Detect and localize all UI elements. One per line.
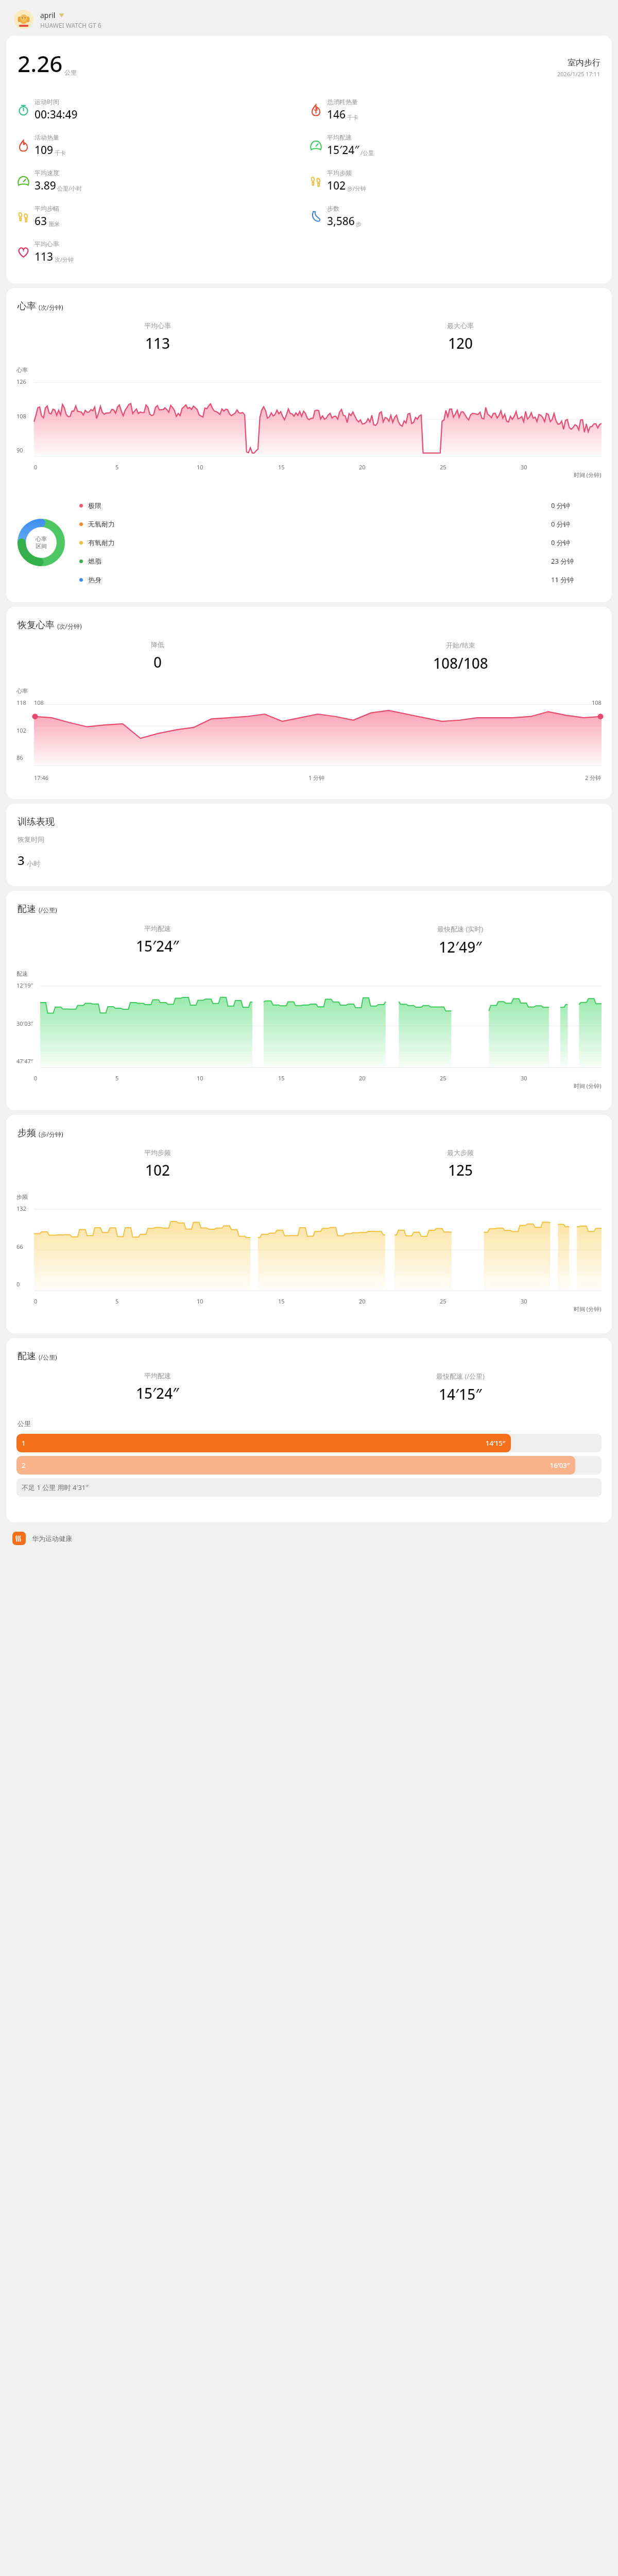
staticText: 20 bbox=[359, 463, 366, 471]
staticText: 12′49″ bbox=[439, 937, 482, 957]
staticText: 心率 bbox=[16, 687, 28, 694]
staticText: /公里 bbox=[360, 149, 374, 157]
staticText: 10 bbox=[197, 463, 203, 471]
staticText: 14′15″ bbox=[439, 1384, 482, 1404]
staticText: 1 bbox=[22, 1438, 26, 1448]
button[interactable]: 1 bbox=[16, 1434, 602, 1452]
staticText: 步频 bbox=[18, 1127, 36, 1139]
staticText: 0 分钟 bbox=[551, 538, 570, 547]
staticText: 最大心率 bbox=[447, 321, 474, 330]
staticText: 平均配速 bbox=[144, 1371, 171, 1380]
staticText: 0 bbox=[34, 463, 38, 471]
staticText: 平均配速 bbox=[144, 924, 171, 933]
staticText: 配速 bbox=[18, 903, 36, 915]
staticText: 心率 bbox=[36, 535, 47, 543]
staticText: 23 分钟 bbox=[551, 556, 574, 566]
button[interactable]: 平均速度 bbox=[16, 169, 309, 193]
button[interactable]: 不足 1 公里 用时 4′31″ bbox=[16, 1478, 602, 1497]
staticText: 30 bbox=[521, 1074, 527, 1082]
button[interactable]: 平均心率 bbox=[16, 240, 309, 264]
staticText: 102 bbox=[327, 178, 346, 193]
staticText: 运动时间 bbox=[35, 98, 59, 106]
staticText: 平均心率 bbox=[35, 240, 59, 248]
staticText: 5 bbox=[115, 1074, 119, 1082]
staticText: 20 bbox=[359, 1297, 366, 1305]
staticText: 平均步幅 bbox=[35, 205, 59, 212]
staticText: 平均步频 bbox=[144, 1148, 171, 1157]
button[interactable]: 步数 bbox=[309, 205, 602, 229]
button[interactable]: 平均配速 bbox=[309, 133, 602, 158]
staticText: 102 bbox=[145, 1160, 170, 1180]
staticText: 146 bbox=[327, 107, 346, 122]
staticText: 1 分钟 bbox=[308, 774, 325, 782]
staticText: 90 bbox=[16, 446, 23, 454]
staticText: 热身 bbox=[88, 575, 101, 584]
staticText: 17:46 bbox=[34, 774, 49, 782]
staticText: 配速 bbox=[18, 1350, 36, 1362]
button[interactable]: 活动热量 bbox=[16, 133, 309, 158]
staticText: (次/分钟) bbox=[39, 303, 63, 311]
button[interactable]: 有氧耐力 bbox=[79, 538, 600, 547]
staticText: 恢复时间 bbox=[18, 835, 44, 843]
staticText: 配速 bbox=[16, 970, 28, 977]
staticText: 恢复心率 bbox=[18, 619, 55, 631]
staticText: 5 bbox=[115, 463, 119, 471]
button[interactable]: 2 bbox=[16, 1456, 602, 1475]
staticText: 2 bbox=[22, 1461, 26, 1470]
staticText: 0 bbox=[16, 1280, 20, 1288]
button[interactable]: 运动时间 bbox=[16, 98, 309, 122]
staticText: 15 bbox=[278, 1297, 285, 1305]
staticText: 千卡 bbox=[347, 114, 358, 121]
staticText: 2.26 bbox=[18, 48, 63, 79]
staticText: 15 bbox=[278, 1074, 285, 1082]
staticText: 时间 (分钟) bbox=[574, 1305, 602, 1313]
staticText: 燃脂 bbox=[88, 557, 101, 565]
staticText: 16′03″ bbox=[550, 1461, 570, 1470]
button[interactable]: 总消耗热量 bbox=[309, 98, 602, 122]
staticText: 步 bbox=[356, 221, 362, 228]
button[interactable]: 燃脂 bbox=[79, 556, 600, 566]
button[interactable]: 华为运动健康 bbox=[12, 1532, 618, 1545]
staticText: 公里 bbox=[64, 69, 77, 76]
staticText: 厘米 bbox=[48, 221, 60, 228]
button[interactable]: 平均步幅 bbox=[16, 205, 309, 229]
staticText: 总消耗热量 bbox=[327, 98, 358, 106]
staticText: 12′19″ bbox=[16, 981, 33, 989]
staticText: 132 bbox=[16, 1205, 26, 1212]
staticText: 公里/小时 bbox=[57, 184, 82, 192]
staticText: 无氧耐力 bbox=[88, 520, 115, 528]
staticText: 时间 (分钟) bbox=[574, 471, 602, 479]
staticText: 102 bbox=[16, 726, 26, 734]
staticText: 3.89 bbox=[35, 178, 56, 193]
staticText: 120 bbox=[448, 333, 473, 353]
staticText: 00:34:49 bbox=[35, 107, 78, 122]
button[interactable]: 平均步频 bbox=[309, 169, 602, 193]
staticText: 小时 bbox=[27, 859, 40, 868]
staticText: 30 bbox=[521, 1297, 527, 1305]
staticText: 108 bbox=[592, 699, 602, 706]
staticText: 最快配速 (/公里) bbox=[436, 1371, 485, 1381]
staticText: 86 bbox=[16, 754, 23, 761]
staticText: 108 bbox=[34, 699, 44, 706]
staticText: 有氧耐力 bbox=[88, 538, 115, 547]
staticText: 3 bbox=[18, 852, 25, 869]
button[interactable]: april bbox=[14, 10, 618, 29]
staticText: 平均配速 bbox=[327, 133, 352, 141]
button[interactable]: 无氧耐力 bbox=[79, 519, 600, 529]
button[interactable]: 极限 bbox=[79, 501, 600, 510]
button[interactable]: 热身 bbox=[79, 575, 600, 584]
staticText: 25 bbox=[440, 1297, 447, 1305]
staticText: 2026/1/25 17:11 bbox=[557, 70, 600, 78]
staticText: 25 bbox=[440, 463, 447, 471]
staticText: 心率 bbox=[18, 300, 36, 312]
staticText: 步数 bbox=[327, 205, 339, 212]
staticText: (步/分钟) bbox=[39, 1130, 63, 1138]
staticText: 室内步行 bbox=[568, 58, 600, 68]
staticText: 开始/结束 bbox=[446, 640, 475, 650]
staticText: 步/分钟 bbox=[347, 184, 367, 192]
staticText: 不足 1 公里 用时 4′31″ bbox=[22, 1483, 89, 1492]
staticText: 训练表现 bbox=[18, 816, 55, 828]
staticText: 极限 bbox=[88, 501, 101, 510]
staticText: 108/108 bbox=[433, 653, 488, 673]
staticText: (/公里) bbox=[39, 1353, 57, 1361]
